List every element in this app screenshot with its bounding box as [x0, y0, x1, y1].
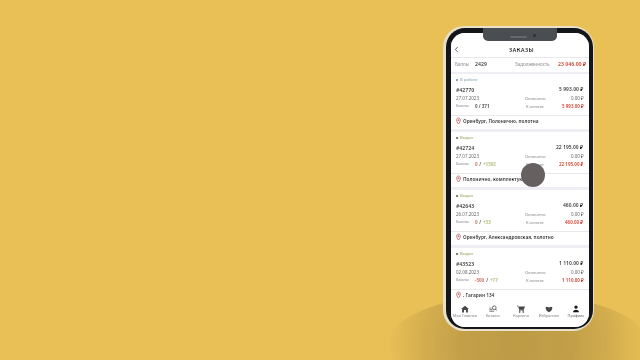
staticText: , Гагарин 134	[463, 292, 495, 298]
staticText: 0.00 ₽	[571, 211, 584, 217]
staticText: 5 993.00 ₽	[559, 86, 584, 93]
staticText: 1 110.00 ₽	[562, 277, 584, 283]
staticText: #42643	[456, 202, 475, 209]
button[interactable]: Профиль	[563, 303, 589, 318]
staticText: Баллы	[455, 61, 470, 67]
staticText: Оплачено:	[525, 212, 546, 218]
button[interactable]: Моя Главная	[451, 303, 479, 318]
staticText: 460.00 ₽	[565, 219, 584, 225]
staticText: К оплате:	[526, 278, 545, 284]
staticText: Выдан	[460, 135, 474, 141]
staticText: В работе	[460, 77, 478, 83]
staticText: +1592	[483, 161, 496, 167]
staticText: 2429	[475, 60, 487, 67]
staticText: #42724	[456, 144, 475, 151]
staticText: Выдан	[460, 193, 474, 199]
staticText: Полонично, комплектующие	[463, 176, 534, 182]
staticText: 0.00 ₽	[571, 153, 584, 159]
staticText: 460.00 ₽	[563, 202, 584, 209]
staticText: Задолженность	[515, 61, 550, 67]
button[interactable]: Каталог	[479, 303, 507, 318]
staticText: #43523	[456, 260, 475, 267]
staticText: Корзина	[507, 313, 535, 318]
button[interactable]: Выдан	[451, 190, 589, 245]
staticText: Профиль	[563, 313, 589, 318]
button[interactable]: Выдан	[451, 248, 589, 303]
staticText: 0.00 ₽	[571, 269, 584, 275]
staticText: 22 195.00 ₽	[559, 161, 584, 167]
staticText: 22 195.00 ₽	[556, 144, 584, 151]
staticText: 02.08.2023	[456, 269, 480, 275]
staticText: Выдан	[460, 251, 474, 257]
staticText: 27.07.2023	[456, 95, 480, 101]
staticText: /	[478, 161, 483, 167]
button[interactable]: Back	[452, 45, 461, 54]
staticText: К оплате:	[526, 162, 545, 168]
staticText: 0	[475, 219, 478, 225]
button[interactable]: Избранное	[535, 303, 563, 318]
staticText: К оплате:	[526, 220, 545, 226]
staticText: Каталог	[479, 313, 507, 318]
staticText: 0.00 ₽	[571, 95, 584, 101]
staticText: +33	[483, 219, 491, 225]
button[interactable]: Выдан	[451, 132, 589, 187]
staticText: Оренбург, Александровская, полотно	[463, 234, 554, 240]
staticText: Баллы	[456, 103, 469, 109]
staticText: -500	[475, 277, 485, 283]
staticText: 0 / 371	[475, 103, 490, 109]
staticText: Оплачено:	[525, 96, 546, 102]
staticText: 27.07.2023	[456, 153, 480, 159]
button[interactable]: В работе	[451, 74, 589, 129]
staticText: Оплачено:	[525, 270, 546, 276]
staticText: Оренбург, Полонично, полотна	[463, 118, 539, 124]
staticText: К оплате:	[526, 104, 545, 110]
staticText: 0	[475, 161, 478, 167]
staticText: 26.07.2023	[456, 211, 480, 217]
staticText: ЗАКАЗЫ	[509, 46, 534, 54]
button[interactable]: Корзина	[507, 303, 535, 318]
staticText: /	[478, 219, 483, 225]
staticText: Избранное	[535, 313, 563, 318]
staticText: /	[485, 277, 490, 283]
staticText: Баллы	[456, 219, 469, 225]
staticText: 5 993.00 ₽	[562, 103, 584, 109]
staticText: Моя Главная	[451, 313, 479, 318]
staticText: 23 046.00 ₽	[558, 60, 587, 67]
staticText: Оплачено:	[525, 154, 546, 160]
staticText: Баллы	[456, 161, 469, 167]
staticText: +77	[490, 277, 498, 283]
staticText: #42770	[456, 86, 475, 93]
staticText: 1 110.00 ₽	[559, 260, 584, 267]
staticText: Баллы	[456, 277, 469, 283]
